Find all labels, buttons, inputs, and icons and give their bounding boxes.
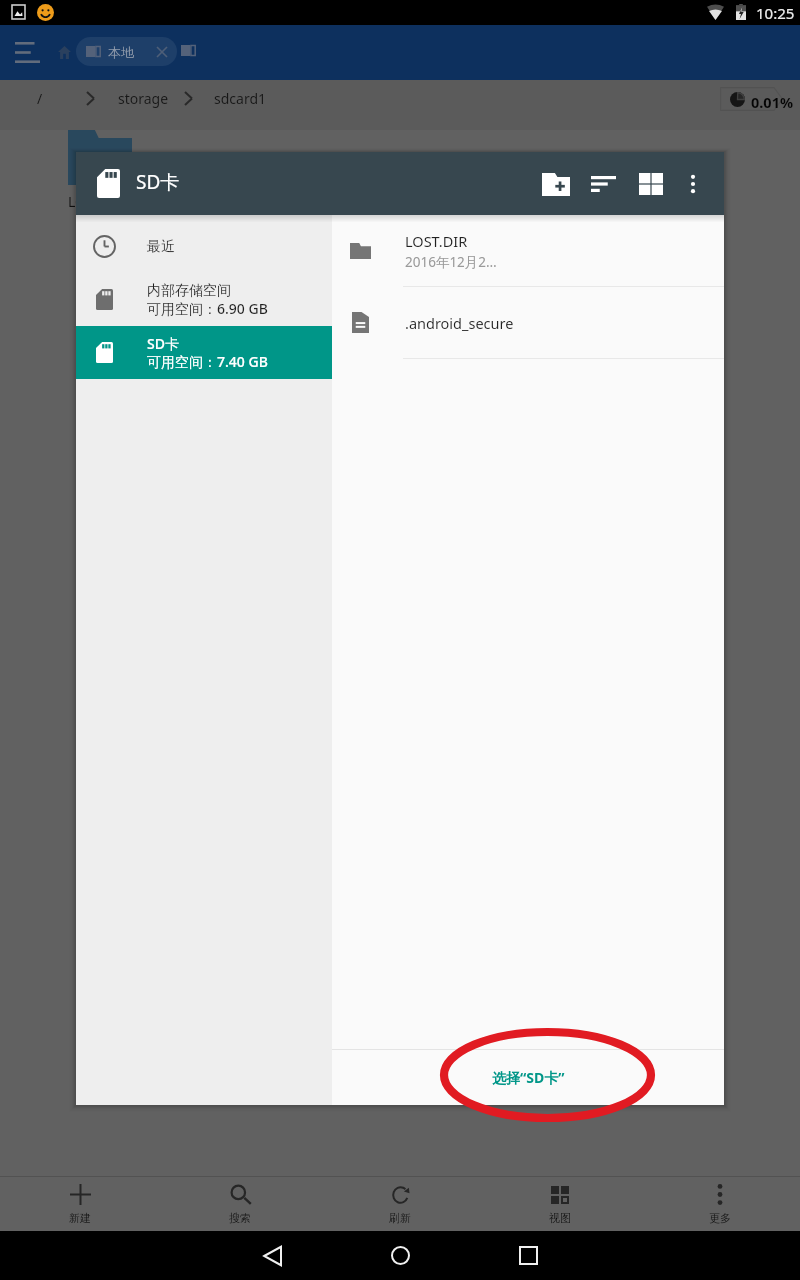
staticText: LOST.DIR — [68, 192, 129, 211]
button[interactable]: 更多 — [640, 1177, 800, 1231]
staticText: .android_secure — [405, 313, 514, 333]
button[interactable]: 最近 — [76, 220, 332, 273]
button[interactable]: 视图 — [480, 1177, 640, 1231]
button[interactable]: 刷新 — [320, 1177, 480, 1231]
staticText: LOST.DIR — [405, 231, 468, 251]
staticText: 视图 — [549, 1211, 571, 1225]
button[interactable]: 搜索 — [160, 1177, 320, 1231]
button[interactable]: Home — [368, 1231, 433, 1280]
staticText: 刷新 — [389, 1211, 411, 1225]
button[interactable]: 内部存储空间 可用空间：6.90 GB — [76, 273, 332, 326]
button[interactable]: LOST.DIR — [332, 215, 724, 287]
staticText: 新建 — [69, 1211, 91, 1225]
button[interactable]: .android_secure — [332, 287, 724, 359]
button[interactable]: 本地 — [76, 37, 177, 66]
button[interactable]: Sort — [579, 160, 627, 208]
staticText: 更多 — [709, 1211, 731, 1225]
staticText: 搜索 — [229, 1211, 251, 1225]
staticText: 2016年12月2… — [405, 253, 497, 271]
staticText: sdcard1 — [214, 89, 267, 108]
button[interactable]: Menu — [6, 33, 48, 72]
button[interactable]: More options — [669, 160, 717, 208]
staticText: 本地 — [108, 44, 134, 60]
button[interactable]: SD卡 可用空间：7.40 GB — [76, 326, 332, 379]
staticText: / — [37, 89, 43, 108]
button[interactable]: Home — [50, 37, 78, 67]
button[interactable]: Back — [240, 1231, 305, 1280]
button[interactable]: 新建 — [0, 1177, 160, 1231]
staticText: 最近 — [147, 238, 175, 256]
staticText: SD卡 可用空间：7.40 GB — [147, 334, 268, 371]
staticText: 选择“SD卡” — [492, 1068, 565, 1087]
staticText: SD卡 — [136, 169, 180, 195]
staticText: 10:25 — [756, 3, 795, 23]
staticText: 0.01% — [751, 92, 794, 112]
button[interactable]: New folder — [532, 160, 580, 208]
button[interactable]: 选择“SD卡” — [332, 1050, 724, 1105]
button[interactable]: Recent apps — [496, 1231, 561, 1280]
staticText: storage — [118, 89, 169, 108]
staticText: 内部存储空间 可用空间：6.90 GB — [147, 282, 268, 318]
button[interactable]: Grid view — [627, 160, 675, 208]
